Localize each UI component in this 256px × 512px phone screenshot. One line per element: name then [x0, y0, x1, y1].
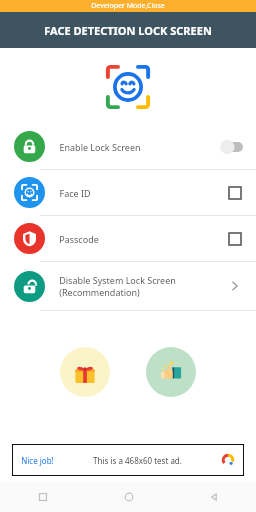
button[interactable]: Face ID: [0, 170, 256, 215]
button[interactable]: Nice job!: [13, 445, 243, 475]
button[interactable]: Checkbox: [226, 184, 244, 202]
button[interactable]: Rate us: [146, 347, 196, 397]
button[interactable]: Checkbox: [226, 230, 244, 248]
button[interactable]: Recents: [0, 482, 86, 512]
staticText: FACE DETECTION LOCK SCREEN: [44, 23, 212, 38]
staticText: Face ID: [59, 187, 91, 199]
button[interactable]: Gift: [60, 347, 110, 397]
staticText: Disable System Lock Screen: [59, 274, 176, 286]
staticText: Enable Lock Screen: [59, 141, 141, 153]
button[interactable]: Passcode: [0, 216, 256, 261]
staticText: Passcode: [59, 233, 99, 245]
button[interactable]: Toggle: [218, 139, 244, 155]
staticText: This is a 468x60 test ad.: [93, 455, 182, 466]
staticText: Nice job!: [21, 455, 54, 466]
button[interactable]: Back: [171, 482, 256, 512]
staticText: Developer Mode,Close: [91, 1, 165, 11]
staticText: (Recommendation): [59, 286, 140, 298]
button[interactable]: Home: [86, 482, 171, 512]
button[interactable]: Developer Mode,Close: [0, 0, 256, 12]
button[interactable]: Enable Lock Screen: [0, 124, 256, 169]
button[interactable]: Disable System Lock Screen: [0, 262, 256, 310]
